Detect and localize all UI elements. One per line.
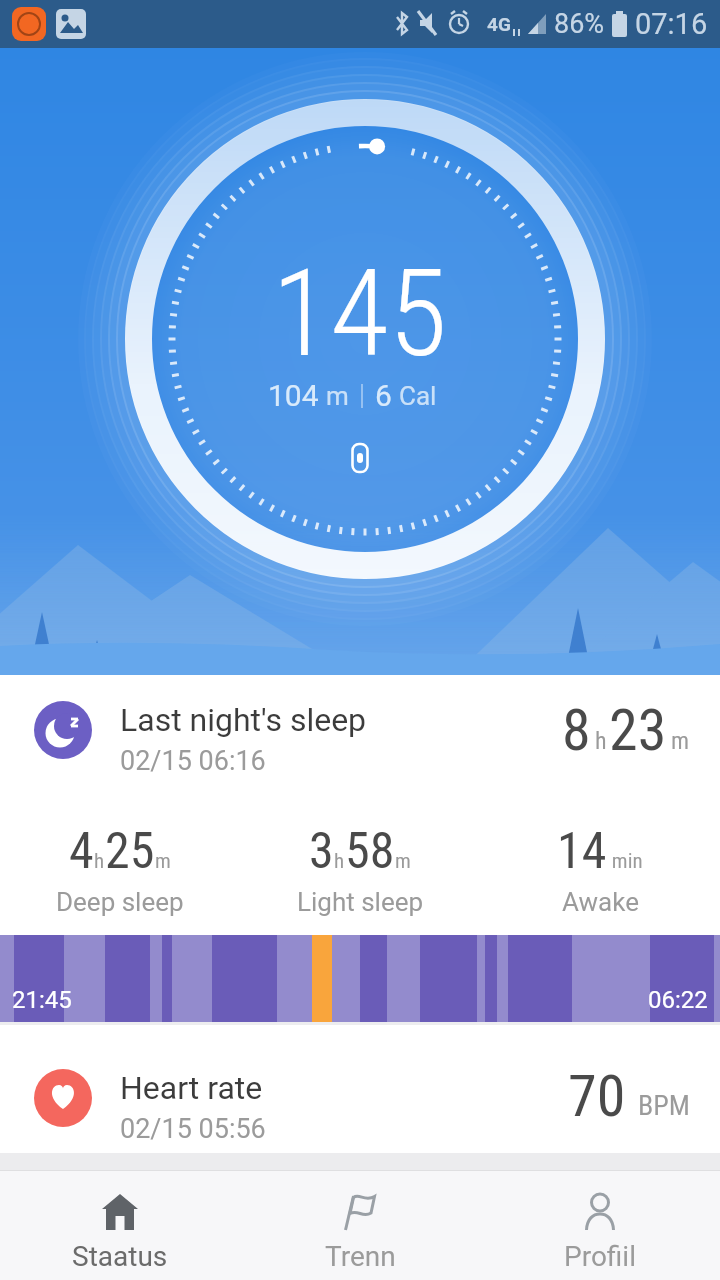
staticText: m [326, 381, 349, 411]
staticText: 58 [345, 822, 395, 881]
staticText: Cal [399, 381, 437, 411]
staticText: h [595, 727, 607, 755]
staticText: Staatus [72, 1240, 168, 1273]
staticText: 145 [272, 244, 448, 385]
staticText: h [334, 849, 345, 874]
staticText: 23 [609, 696, 667, 764]
button[interactable]: Profiil [480, 1170, 720, 1280]
button[interactable]: Staatus [0, 1170, 240, 1280]
staticText: m [671, 727, 690, 755]
staticText: m [395, 849, 411, 874]
staticText: 6 [375, 378, 392, 413]
staticText: 02/15 06:16 [120, 745, 266, 777]
staticText: 8 [562, 696, 591, 764]
staticText: Heart rate [120, 1069, 263, 1107]
staticText: Profiil [564, 1240, 636, 1273]
staticText: 25 [105, 822, 155, 881]
staticText: 21:45 [12, 986, 72, 1014]
button[interactable]: Trenn [240, 1170, 480, 1280]
staticText: 86% [554, 8, 605, 40]
staticText: 14 [557, 822, 607, 881]
staticText: 06:22 [648, 986, 708, 1014]
button[interactable]: Heart rate [0, 1025, 720, 1153]
staticText: Light sleep [297, 887, 424, 917]
staticText: Awake [562, 887, 639, 917]
staticText: BPM [638, 1089, 690, 1122]
staticText: h [94, 849, 105, 874]
staticText: 70 [568, 1062, 626, 1130]
staticText: 4G [487, 13, 511, 35]
staticText: 02/15 05:56 [120, 1113, 266, 1145]
staticText: Last night's sleep [120, 701, 367, 739]
button[interactable]: Last night's sleep [0, 675, 720, 820]
staticText: 07:16 [635, 7, 708, 41]
staticText: m [155, 849, 171, 874]
staticText: 3 [309, 822, 334, 881]
staticText: 104 [268, 378, 319, 413]
staticText: min [607, 849, 643, 874]
staticText: 4 [69, 822, 94, 881]
staticText: Trenn [325, 1240, 396, 1273]
staticText: Deep sleep [56, 887, 184, 917]
